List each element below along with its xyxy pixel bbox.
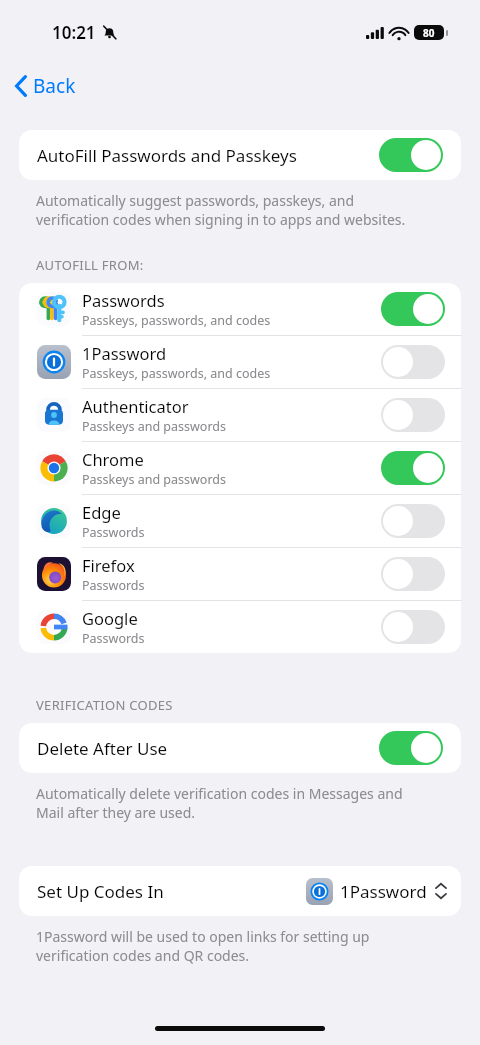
button[interactable]: Off: [381, 504, 445, 538]
staticText: Passkeys and passwords: [82, 471, 226, 488]
staticText: VERIFICATION CODES: [36, 696, 173, 714]
button[interactable]: On: [381, 451, 445, 485]
staticText: Automatically suggest passwords, passkey…: [36, 191, 406, 229]
staticText: Set Up Codes In: [37, 880, 164, 903]
staticText: Passkeys, passwords, and codes: [82, 365, 271, 382]
staticText: Passwords: [82, 577, 145, 594]
button[interactable]: AutoFill Passwords and Passkeys: [19, 130, 461, 180]
staticText: Passkeys and passwords: [82, 418, 226, 435]
button[interactable]: On: [381, 292, 445, 326]
staticText: Authenticator: [82, 395, 189, 417]
button[interactable]: 1Password: [19, 336, 461, 388]
staticText: Delete After Use: [37, 737, 168, 760]
staticText: 80: [423, 26, 435, 40]
button[interactable]: Passwords: [19, 283, 461, 335]
staticText: 10:21: [52, 21, 96, 44]
staticText: Passwords: [82, 524, 145, 541]
button[interactable]: Set Up Codes In: [19, 866, 461, 916]
staticText: Firefox: [82, 554, 135, 576]
button[interactable]: Off: [381, 398, 445, 432]
staticText: Passwords: [82, 289, 165, 311]
button[interactable]: Off: [381, 610, 445, 644]
button[interactable]: Edge: [19, 495, 461, 547]
button[interactable]: On: [379, 138, 443, 172]
staticText: Edge: [82, 501, 121, 523]
button[interactable]: Google: [19, 601, 461, 653]
button[interactable]: Off: [381, 557, 445, 591]
button[interactable]: Firefox: [19, 548, 461, 600]
button[interactable]: Back: [8, 67, 82, 105]
staticText: Chrome: [82, 448, 144, 470]
button[interactable]: Chrome: [19, 442, 461, 494]
button[interactable]: On: [379, 731, 443, 765]
staticText: 1Password: [340, 880, 427, 903]
button[interactable]: Off: [381, 345, 445, 379]
staticText: 1Password will be used to open links for…: [36, 927, 370, 965]
staticText: Back: [33, 73, 76, 99]
button[interactable]: Authenticator: [19, 389, 461, 441]
staticText: AUTOFILL FROM:: [36, 256, 144, 274]
staticText: 1Password: [82, 342, 167, 364]
staticText: Automatically delete verification codes …: [36, 784, 403, 822]
staticText: Passwords: [82, 630, 145, 647]
button[interactable]: Delete After Use: [19, 723, 461, 773]
staticText: AutoFill Passwords and Passkeys: [37, 144, 297, 167]
staticText: Google: [82, 607, 138, 629]
staticText: Passkeys, passwords, and codes: [82, 312, 271, 329]
